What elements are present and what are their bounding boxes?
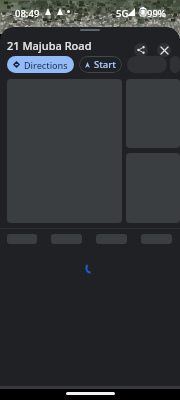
staticText: 5G	[116, 7, 129, 20]
staticText: 08:49	[15, 7, 40, 20]
button[interactable]: Start	[79, 56, 122, 73]
button[interactable]	[127, 56, 167, 73]
staticText: 21 Majuba Road	[7, 38, 92, 53]
staticText: 99%	[147, 7, 166, 20]
button[interactable]: Share	[134, 43, 148, 57]
staticText: Start	[94, 58, 116, 71]
button[interactable]: Close	[157, 43, 171, 57]
button[interactable]	[170, 56, 180, 73]
button[interactable]: Directions	[7, 56, 74, 73]
staticText: Directions	[24, 59, 68, 71]
